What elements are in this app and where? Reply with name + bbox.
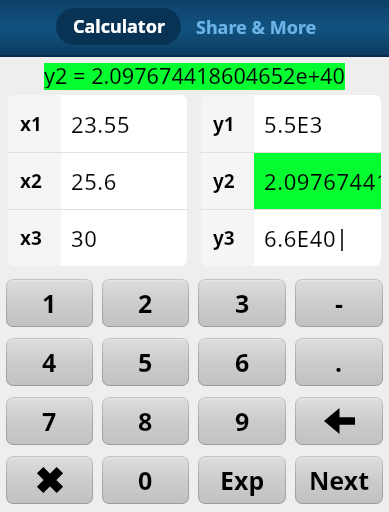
staticText: . — [335, 345, 343, 379]
button[interactable]: Share & More — [189, 0, 323, 55]
button[interactable]: 6 — [198, 338, 286, 386]
button[interactable]: . — [295, 338, 383, 386]
staticText: Share & More — [196, 15, 317, 40]
button[interactable]: Calculator — [56, 8, 181, 45]
staticText: x3 — [20, 225, 42, 251]
staticText: y3 — [213, 225, 235, 251]
button[interactable]: y3 — [201, 210, 381, 266]
staticText: 0 — [138, 463, 153, 497]
button[interactable]: Clear — [6, 456, 93, 504]
staticText: x1 — [20, 111, 42, 137]
staticText: 23.55 — [71, 109, 131, 139]
staticText: - — [335, 286, 344, 320]
button[interactable]: 8 — [102, 397, 189, 445]
staticText: 3 — [235, 286, 250, 320]
staticText: x2 — [20, 168, 42, 194]
button[interactable]: 2 — [102, 279, 189, 327]
staticText: y1 — [213, 111, 235, 137]
button[interactable]: 9 — [198, 397, 286, 445]
button[interactable]: Exp — [198, 456, 286, 504]
staticText: 5 — [138, 345, 153, 379]
staticText: 7 — [42, 404, 57, 438]
staticText: y2 = 2.097674418604652e+40 — [44, 61, 345, 88]
staticText: 30 — [71, 223, 98, 253]
button[interactable]: y1 — [201, 95, 381, 152]
staticText: Next — [309, 463, 370, 497]
button[interactable]: 1 — [6, 279, 93, 327]
staticText: 9 — [235, 404, 250, 438]
button[interactable]: 7 — [6, 397, 93, 445]
staticText: 2 — [138, 286, 153, 320]
button[interactable]: - — [295, 279, 383, 327]
staticText: Exp — [220, 463, 265, 497]
staticText: 25.6 — [71, 166, 118, 196]
staticText: y2 — [213, 168, 235, 194]
staticText: 1 — [42, 286, 57, 320]
button[interactable]: 3 — [198, 279, 286, 327]
staticText: 5.5E3 — [264, 109, 323, 139]
staticText: 6 — [235, 345, 250, 379]
button[interactable]: Backspace — [295, 397, 383, 445]
button[interactable]: 0 — [102, 456, 189, 504]
button[interactable]: x1 — [8, 95, 187, 152]
button[interactable]: 5 — [102, 338, 189, 386]
button[interactable]: y2 — [201, 153, 381, 209]
staticText: 8 — [138, 404, 153, 438]
staticText: 2.09767441860 — [264, 166, 381, 196]
staticText: 4 — [42, 345, 57, 379]
button[interactable]: 4 — [6, 338, 93, 386]
button[interactable]: Next — [295, 456, 383, 504]
staticText: Calculator — [73, 14, 165, 39]
staticText: 6.6E40 — [264, 223, 337, 253]
button[interactable]: x3 — [8, 210, 187, 266]
button[interactable]: x2 — [8, 153, 187, 209]
